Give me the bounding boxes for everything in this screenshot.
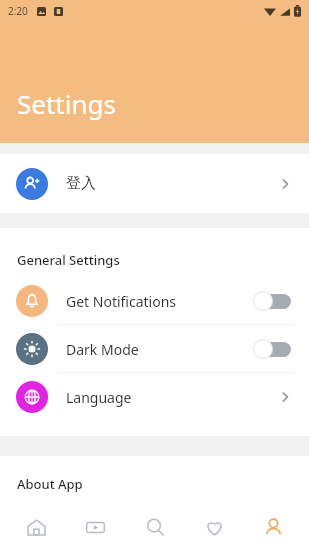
- button[interactable]: Search: [132, 504, 178, 550]
- button[interactable]: Language: [0, 373, 309, 421]
- button[interactable]: Profile: [250, 504, 296, 550]
- button[interactable]: Favourites: [191, 504, 237, 550]
- staticText: 登入: [66, 174, 96, 193]
- button[interactable]: 登入: [0, 154, 309, 213]
- staticText: 2:20: [8, 4, 28, 18]
- staticText: Dark Mode: [66, 340, 139, 359]
- button[interactable]: Get Notifications: [0, 277, 309, 325]
- staticText: Language: [66, 388, 132, 407]
- button[interactable]: Toggle: [253, 291, 293, 311]
- staticText: General Settings: [17, 251, 120, 269]
- staticText: About App: [17, 475, 83, 493]
- button[interactable]: Videos: [72, 504, 118, 550]
- button[interactable]: Toggle: [253, 339, 293, 359]
- staticText: Get Notifications: [66, 292, 177, 311]
- button[interactable]: Dark Mode: [0, 325, 309, 373]
- button[interactable]: Home: [13, 504, 59, 550]
- staticText: Settings: [17, 86, 116, 121]
